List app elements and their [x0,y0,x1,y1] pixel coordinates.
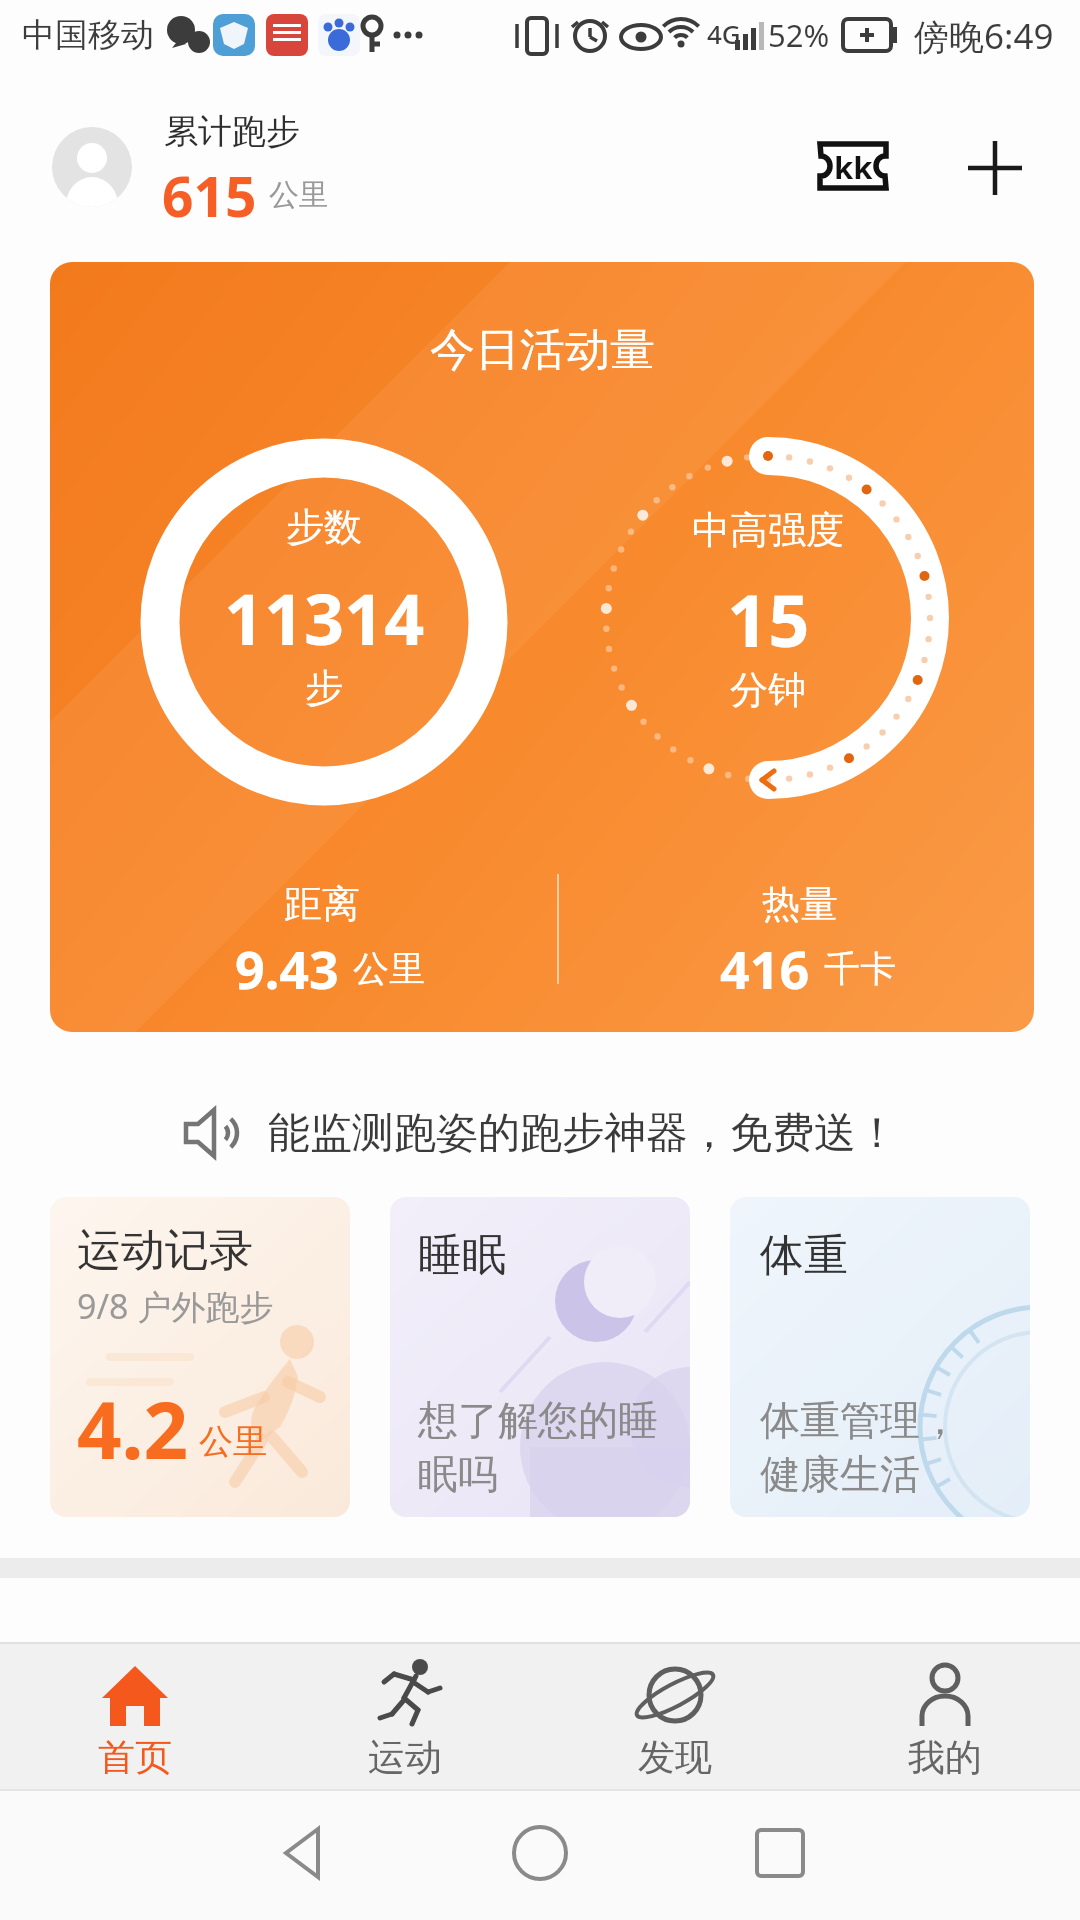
staticText: 运动 [368,1734,442,1781]
staticText: 52% [768,14,830,56]
staticText: 想了解您的睡 眠吗 [418,1395,659,1500]
staticText: 15 [727,570,810,660]
button[interactable]: 能监测跑姿的跑步神器，免费送！ [0,1098,1080,1168]
staticText: 11314 [224,570,425,660]
staticText: 傍晚6:49 [914,12,1054,58]
button[interactable] [0,1789,360,1920]
staticText: 运动记录 [77,1223,253,1278]
staticText: 分钟 [730,666,806,714]
staticText: 4.2 [77,1376,189,1482]
staticText: 今日活动量 [430,322,655,379]
staticText: 我的 [908,1734,982,1781]
button[interactable]: 运动记录 [50,1197,350,1517]
staticText: 首页 [98,1734,172,1781]
button[interactable]: 今日活动量 [50,262,1034,1032]
button[interactable]: 发现 [540,1642,810,1789]
staticText: 累计跑步 [164,110,300,153]
staticText: 体重 [760,1228,848,1283]
staticText: 睡眠 [418,1228,506,1283]
staticText: 热量 [762,880,838,928]
staticText: 公里 [199,1420,267,1463]
staticText: 公里 [269,176,329,214]
staticText: 能监测跑姿的跑步神器，免费送！ [268,1107,898,1160]
button[interactable]: 首页 [0,1642,270,1789]
staticText: 9.43 [235,933,339,995]
staticText: 9/8 户外跑步 [77,1283,274,1329]
staticText: 距离 [284,880,360,928]
staticText: 4G [707,16,741,51]
staticText: 千卡 [824,946,896,991]
button[interactable] [52,127,132,207]
staticText: 发现 [638,1734,712,1781]
staticText: 416 [720,933,810,995]
button[interactable]: 睡眠 [390,1197,690,1517]
staticText: 615 [162,158,257,218]
staticText: kk [834,146,873,186]
staticText: 步数 [286,503,362,551]
staticText: 中高强度 [692,506,844,554]
button[interactable]: 体重 [730,1197,1030,1517]
button[interactable] [963,136,1027,200]
staticText: 公里 [353,946,425,991]
button[interactable]: 我的 [810,1642,1080,1789]
staticText: 体重管理， 健康生活 [760,1395,960,1500]
button[interactable]: kk [810,134,896,198]
button[interactable]: 运动 [270,1642,540,1789]
button[interactable]: 615 [162,158,329,218]
staticText: 中国移动 [22,14,154,56]
staticText: 步 [305,664,343,712]
button[interactable] [720,1789,1080,1920]
button[interactable] [360,1789,720,1920]
